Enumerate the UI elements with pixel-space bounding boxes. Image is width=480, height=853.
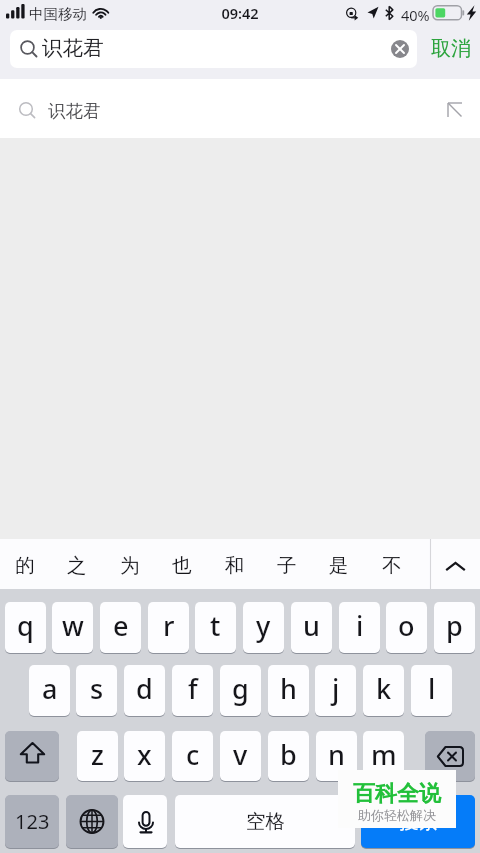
button[interactable]: v [220, 731, 261, 781]
button[interactable]: 搜索 [361, 795, 475, 848]
staticText: 空格 [246, 809, 285, 834]
staticText: w [62, 607, 84, 644]
staticText: p [446, 607, 463, 644]
staticText: y [256, 607, 271, 644]
button[interactable]: 不 [366, 539, 418, 589]
button[interactable]: Backspace [425, 731, 475, 781]
staticText: 123 [15, 808, 50, 835]
button[interactable]: 和 [209, 539, 261, 589]
staticText: a [42, 670, 58, 707]
staticText: 子 [277, 553, 297, 578]
staticText: i [356, 607, 364, 644]
button[interactable]: 也 [156, 539, 208, 589]
button[interactable]: e [100, 602, 141, 653]
staticText: x [137, 736, 152, 773]
button[interactable]: u [291, 602, 332, 653]
button[interactable]: p [434, 602, 475, 653]
staticText: 是 [329, 553, 349, 578]
staticText: t [210, 607, 221, 644]
button[interactable]: Clear search text [388, 37, 412, 61]
staticText: 百科全说 [338, 780, 456, 808]
button[interactable]: 的 [0, 539, 51, 589]
button[interactable]: 取消 [425, 30, 477, 68]
button[interactable]: x [124, 731, 165, 781]
button[interactable]: r [148, 602, 189, 653]
button[interactable]: t [195, 602, 236, 653]
button[interactable]: 之 [51, 539, 103, 589]
button[interactable]: w [52, 602, 93, 653]
button[interactable]: y [243, 602, 284, 653]
staticText: 搜索 [399, 809, 438, 834]
button[interactable]: s [76, 665, 117, 716]
staticText: s [90, 670, 104, 707]
button[interactable]: n [316, 731, 357, 781]
staticText: 中国移动 [29, 5, 87, 23]
button[interactable]: 为 [104, 539, 156, 589]
button[interactable]: o [386, 602, 427, 653]
button[interactable]: g [220, 665, 261, 716]
button[interactable]: q [5, 602, 46, 653]
staticText: q [17, 607, 34, 644]
staticText: g [232, 670, 249, 707]
staticText: o [398, 607, 415, 644]
button[interactable]: j [315, 665, 356, 716]
staticText: 09:42 [0, 3, 480, 23]
staticText: r [163, 607, 175, 644]
staticText: l [428, 670, 436, 707]
staticText: 和 [225, 553, 245, 578]
button[interactable]: Expand candidates [430, 539, 480, 589]
button[interactable]: 识花君 [0, 79, 480, 138]
staticText: n [328, 736, 345, 773]
button[interactable]: d [124, 665, 165, 716]
staticText: 不 [382, 553, 402, 578]
staticText: 取消 [431, 36, 471, 61]
staticText: f [188, 670, 198, 707]
staticText: 助你轻松解决 [338, 807, 456, 823]
staticText: 识花君 [48, 100, 101, 122]
button[interactable]: b [268, 731, 309, 781]
button[interactable]: 123 [5, 795, 59, 848]
staticText: j [332, 670, 340, 707]
staticText: u [303, 607, 320, 644]
button[interactable]: Shift [5, 731, 59, 781]
button[interactable]: 是 [313, 539, 365, 589]
button[interactable]: m [363, 731, 404, 781]
staticText: 识花君 [42, 35, 104, 61]
button[interactable]: i [339, 602, 380, 653]
staticText: 之 [67, 553, 87, 578]
staticText: v [233, 736, 248, 773]
staticText: d [136, 670, 153, 707]
staticText: 的 [15, 553, 35, 578]
staticText: 为 [120, 553, 140, 578]
button[interactable]: a [29, 665, 70, 716]
staticText: c [186, 736, 200, 773]
staticText: 也 [172, 553, 192, 578]
button[interactable]: l [411, 665, 452, 716]
button[interactable]: 子 [261, 539, 313, 589]
button[interactable]: f [172, 665, 213, 716]
staticText: z [91, 736, 104, 773]
button[interactable]: Voice input [123, 795, 167, 848]
button[interactable]: c [172, 731, 213, 781]
button[interactable]: 空格 [175, 795, 355, 848]
button[interactable]: k [363, 665, 404, 716]
staticText: h [280, 670, 297, 707]
button[interactable]: 识花君 [10, 30, 417, 68]
staticText: b [280, 736, 297, 773]
staticText: 40% [401, 5, 430, 25]
staticText: e [113, 607, 129, 644]
button[interactable]: z [77, 731, 118, 781]
button[interactable]: h [268, 665, 309, 716]
staticText: k [376, 670, 392, 707]
staticText: m [371, 736, 397, 773]
button[interactable]: Switch keyboard language [66, 795, 118, 848]
